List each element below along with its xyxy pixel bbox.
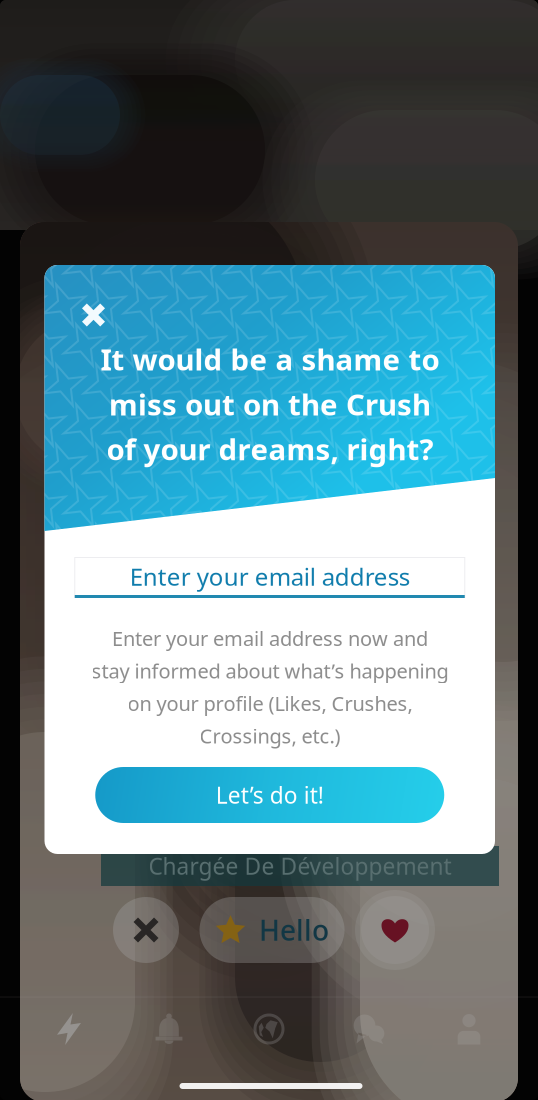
button[interactable]: Close: [68, 290, 118, 340]
staticText: Chargée De Développement: [148, 851, 451, 881]
button[interactable]: Pass: [113, 897, 179, 963]
staticText: Hello: [259, 911, 329, 949]
button[interactable]: Flash: [19, 998, 119, 1060]
button[interactable]: Explore: [219, 998, 319, 1060]
button[interactable]: Profile: [419, 998, 519, 1060]
staticText: Enter your email address: [130, 561, 410, 592]
button[interactable]: Like: [355, 890, 435, 970]
button[interactable]: Let’s do it!: [95, 767, 444, 823]
staticText: Enter your email address now and stay in…: [91, 625, 448, 749]
button[interactable]: Notifications: [119, 998, 219, 1060]
staticText: Let’s do it!: [216, 780, 324, 810]
button[interactable]: Messages: [319, 998, 419, 1060]
staticText: It would be a shame to miss out on the C…: [100, 340, 439, 468]
button[interactable]: Hello: [199, 897, 344, 963]
